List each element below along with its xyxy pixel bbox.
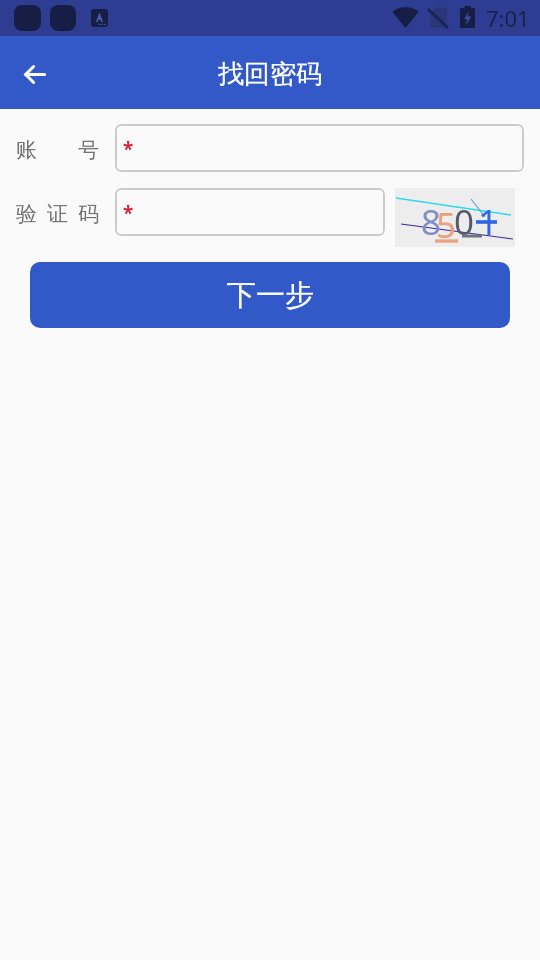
staticText: 证 (47, 201, 68, 227)
button[interactable]: * (115, 124, 524, 172)
button[interactable]: * (115, 188, 385, 236)
staticText: 验 (16, 201, 37, 227)
staticText: 找回密码 (218, 58, 322, 91)
staticText: * (123, 200, 134, 226)
staticText: 码 (78, 201, 99, 227)
button[interactable]: 下一步 (30, 262, 510, 328)
staticText: 0 (454, 198, 475, 246)
staticText: 7:01 (486, 3, 530, 33)
staticText: 账 (16, 137, 37, 163)
staticText: * (123, 136, 134, 162)
staticText: 8 (421, 198, 442, 246)
staticText: 下一步 (227, 277, 314, 314)
staticText: 1 (478, 198, 499, 246)
button[interactable]: Back (12, 52, 57, 97)
staticText: 5 (436, 201, 457, 249)
button[interactable]: Refresh verification code (395, 188, 515, 247)
staticText: 号 (78, 137, 99, 163)
